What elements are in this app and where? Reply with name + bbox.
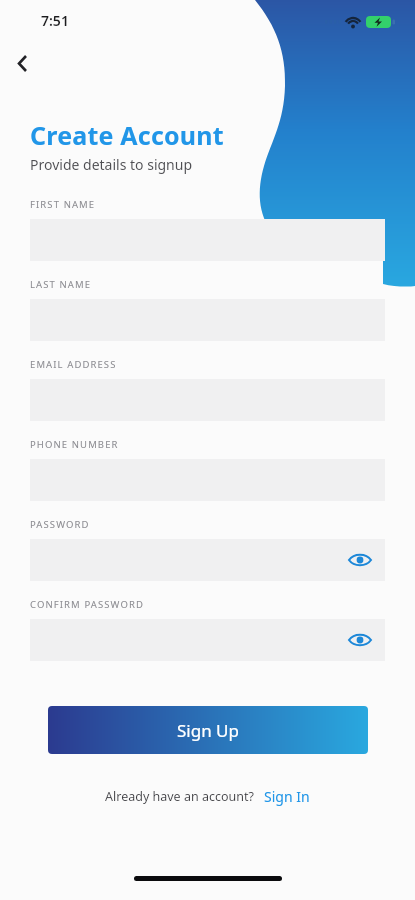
staticText: 7:51 (41, 11, 69, 30)
staticText: PHONE NUMBER (30, 438, 119, 451)
staticText: EMAIL ADDRESS (30, 358, 117, 371)
staticText: Provide details to signup (30, 155, 193, 174)
button[interactable]: Show password (345, 625, 375, 655)
staticText: Already have an account? (105, 788, 254, 805)
button[interactable]: Sign In (264, 787, 310, 806)
staticText: Create Account (30, 118, 224, 152)
staticText: Sign Up (177, 719, 239, 742)
staticText: CONFIRM PASSWORD (30, 598, 144, 611)
button[interactable]: Show password (30, 619, 385, 661)
button[interactable]: Show password (30, 539, 385, 581)
button[interactable]: Show password (345, 545, 375, 575)
button[interactable]: Back (8, 46, 42, 80)
staticText: LAST NAME (30, 278, 92, 291)
staticText: PASSWORD (30, 518, 90, 531)
staticText: Sign In (264, 787, 310, 806)
staticText: FIRST NAME (30, 198, 96, 211)
button[interactable]: Sign Up (48, 706, 368, 754)
